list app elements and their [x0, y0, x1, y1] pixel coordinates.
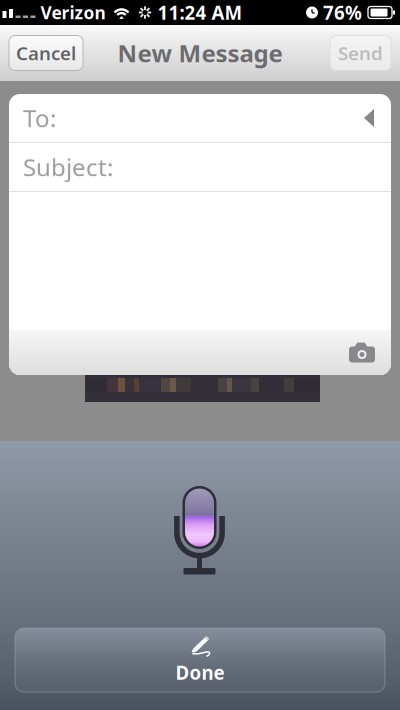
button[interactable]: Cancel — [9, 35, 83, 70]
button[interactable]: Subject: — [9, 143, 391, 191]
staticText: Cancel — [16, 41, 76, 65]
button[interactable]: Insert Photo — [349, 342, 391, 362]
staticText: Done — [175, 660, 224, 685]
staticText: 11:24 AM — [157, 0, 242, 25]
button[interactable]: Done — [15, 628, 385, 692]
staticText: Subject: — [23, 151, 113, 183]
staticText: Send — [338, 41, 383, 65]
staticText: Verizon — [40, 1, 105, 24]
button[interactable]: Send — [330, 35, 391, 70]
staticText: To: — [23, 102, 56, 134]
staticText: 76% — [323, 0, 362, 25]
button[interactable]: To: — [9, 94, 391, 142]
staticText: New Message — [117, 37, 282, 69]
